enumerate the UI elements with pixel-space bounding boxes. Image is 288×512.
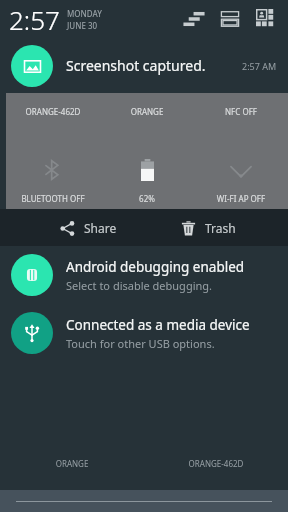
staticText: BLUETOOTH OFF <box>6 193 100 204</box>
button[interactable]: Switch user <box>248 1 284 37</box>
staticText: 62% <box>100 193 194 204</box>
button[interactable]: Bluetooth off <box>6 149 100 191</box>
button[interactable]: Sort notifications <box>176 1 212 37</box>
staticText: Connected as a media device <box>66 316 250 334</box>
staticText: WI-FI AP OFF <box>194 193 288 204</box>
staticText: Touch for other USB options. <box>66 336 215 351</box>
staticText: Trash <box>205 220 236 236</box>
button[interactable]: Screenshot captured. <box>0 38 288 93</box>
staticText: Android debugging enabled <box>66 258 245 276</box>
button[interactable]: Share <box>54 215 123 241</box>
staticText: NFC OFF <box>194 106 288 117</box>
staticText: 2:57 <box>9 2 60 37</box>
button[interactable]: Split screen <box>212 1 248 37</box>
staticText: Share <box>84 220 117 236</box>
button[interactable]: Android debugging enabled <box>0 246 288 304</box>
staticText: MONDAY <box>67 8 102 19</box>
staticText: Select to disable debugging. <box>66 278 213 293</box>
staticText: JUNE 30 <box>67 20 98 31</box>
staticText: ORANGE <box>100 106 194 117</box>
staticText: Screenshot captured. <box>66 56 206 75</box>
button[interactable]: Trash <box>175 215 242 241</box>
staticText: ORANGE-462D <box>144 458 288 469</box>
staticText: ORANGE <box>0 458 144 469</box>
button[interactable]: Battery 62 percent <box>100 149 194 191</box>
staticText: 2:57 AM <box>242 60 277 72</box>
staticText: ORANGE-462D <box>6 106 100 117</box>
button[interactable]: Connected as a media device <box>0 304 288 362</box>
